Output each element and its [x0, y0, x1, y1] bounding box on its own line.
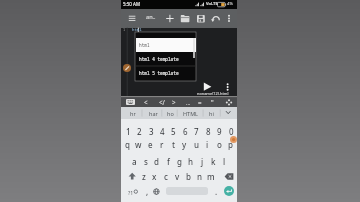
button[interactable]: hi	[181, 106, 241, 120]
staticText: x	[152, 171, 157, 182]
button[interactable]: html 5 template	[136, 66, 196, 80]
button[interactable]: har	[123, 106, 183, 120]
button[interactable]: 8	[203, 125, 214, 138]
button[interactable]: ?1	[101, 185, 161, 199]
button[interactable]: j	[197, 155, 208, 168]
button[interactable]: s	[140, 155, 151, 168]
button[interactable]: 7	[191, 125, 202, 138]
staticText: u	[194, 139, 200, 150]
button[interactable]: w	[133, 138, 144, 151]
button[interactable]: l	[219, 155, 230, 168]
button[interactable]: html	[136, 38, 196, 52]
button[interactable]	[223, 170, 235, 183]
staticText: t	[172, 139, 176, 150]
button[interactable]: HTML	[161, 106, 221, 120]
button[interactable]: hr	[103, 106, 163, 120]
button[interactable]: "	[182, 95, 242, 109]
button[interactable]: html 4 template	[136, 52, 196, 66]
button[interactable]: v	[172, 170, 183, 183]
staticText: 8	[206, 126, 211, 137]
button[interactable]: an..	[121, 10, 181, 24]
button[interactable]: 6	[180, 125, 191, 138]
staticText: VoLTE	[206, 1, 218, 7]
button[interactable]: r	[156, 138, 167, 151]
staticText: an..	[146, 13, 156, 21]
button[interactable]: =	[170, 95, 230, 109]
staticText: 4%	[227, 1, 233, 7]
staticText: </	[159, 98, 165, 106]
staticText: 3	[149, 126, 154, 137]
button[interactable]: u	[191, 138, 202, 151]
staticText: w	[135, 139, 142, 150]
button[interactable]: ho	[140, 106, 200, 120]
button[interactable]	[152, 187, 161, 196]
button[interactable]	[201, 80, 212, 92]
button[interactable]: t	[168, 138, 179, 151]
button[interactable]: a	[129, 155, 140, 168]
button[interactable]: p	[225, 138, 236, 151]
button[interactable]: g	[174, 155, 185, 168]
staticText: html 5 template	[139, 70, 179, 76]
staticText: noname(12).html	[197, 91, 229, 96]
button[interactable]: y	[179, 138, 190, 151]
button[interactable]: b	[183, 170, 194, 183]
button[interactable]: x	[149, 170, 160, 183]
button[interactable]	[124, 10, 140, 27]
button[interactable]	[123, 64, 131, 72]
button[interactable]: o	[214, 138, 225, 151]
staticText: n	[197, 171, 203, 182]
button[interactable]: h	[185, 155, 196, 168]
button[interactable]: 4	[157, 125, 168, 138]
button[interactable]	[126, 99, 135, 105]
staticText: s	[144, 156, 148, 167]
button[interactable]	[224, 98, 234, 107]
button[interactable]: z	[138, 170, 149, 183]
button[interactable]: 0	[226, 125, 237, 138]
staticText: ho	[167, 110, 174, 117]
staticText: 6	[183, 126, 188, 137]
button[interactable]	[223, 80, 232, 92]
staticText: z	[142, 171, 146, 182]
button[interactable]: i	[202, 138, 213, 151]
button[interactable]: 5	[168, 125, 179, 138]
button[interactable]: e	[145, 138, 156, 151]
button[interactable]	[162, 10, 178, 27]
button[interactable]: .	[211, 185, 222, 198]
button[interactable]	[224, 186, 234, 196]
staticText: o	[217, 139, 222, 150]
button[interactable]: ...	[158, 95, 218, 109]
staticText: 1	[126, 126, 131, 137]
button[interactable]: c	[160, 170, 171, 183]
staticText: ,	[146, 186, 149, 197]
staticText: i	[206, 139, 209, 150]
staticText: 1	[123, 27, 126, 32]
staticText: ...	[186, 99, 191, 106]
button[interactable]: </	[132, 95, 192, 109]
button[interactable]: 2	[134, 125, 145, 138]
staticText: k	[211, 156, 216, 167]
button[interactable]	[126, 170, 138, 183]
button[interactable]: d	[151, 155, 162, 168]
staticText: 5:50 AM	[123, 1, 141, 7]
staticText: HTML	[183, 110, 199, 117]
staticText: d	[154, 156, 159, 167]
staticText: l	[223, 156, 226, 167]
button[interactable]: 9	[214, 125, 225, 138]
button[interactable]: >	[144, 95, 204, 109]
button[interactable]	[193, 10, 209, 27]
button[interactable]: n	[194, 170, 205, 183]
button[interactable]: q	[122, 138, 133, 151]
button[interactable]: 1	[123, 125, 134, 138]
button[interactable]: 3	[146, 125, 157, 138]
button[interactable]: f	[163, 155, 174, 168]
button[interactable]	[221, 10, 237, 27]
button[interactable]: ,	[142, 185, 153, 198]
staticText: v	[175, 171, 180, 182]
button[interactable]	[177, 10, 193, 27]
button[interactable]: m	[205, 170, 216, 183]
button[interactable]: k	[208, 155, 219, 168]
staticText: e	[148, 139, 153, 150]
button[interactable]	[208, 10, 224, 27]
button[interactable]: <	[116, 95, 176, 109]
